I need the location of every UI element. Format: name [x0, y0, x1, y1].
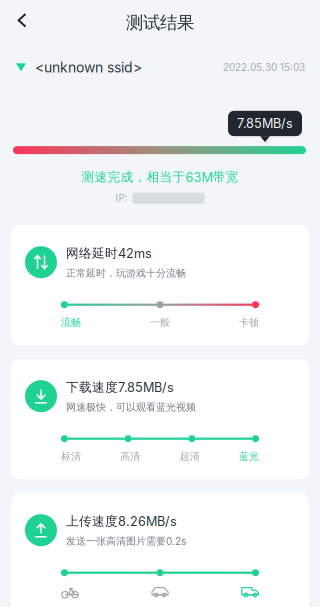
- staticText: 上传速度8.26MB/s: [66, 513, 177, 529]
- staticText: 卡顿: [239, 316, 259, 329]
- staticText: 蓝光: [239, 450, 259, 463]
- staticText: 超清: [180, 450, 200, 463]
- button[interactable]: Back: [0, 0, 39, 38]
- staticText: 高清: [120, 450, 140, 463]
- staticText: 网络延时42ms: [66, 245, 152, 261]
- staticText: 测速完成，相当于63M带宽: [81, 169, 238, 185]
- staticText: 2022.05.30 15:03: [223, 61, 305, 73]
- staticText: 正常延时，玩游戏十分流畅: [66, 267, 186, 279]
- staticText: 发送一张高清图片需要0.2s: [66, 535, 186, 547]
- staticText: 流畅: [61, 316, 81, 329]
- staticText: 测试结果: [126, 12, 194, 34]
- staticText: 7.85MB/s: [237, 116, 293, 131]
- staticText: IP:: [115, 192, 127, 204]
- staticText: 一般: [150, 316, 170, 329]
- staticText: 标清: [61, 450, 81, 463]
- staticText: 网速极快，可以观看蓝光视频: [66, 401, 196, 413]
- staticText: 下载速度7.85MB/s: [66, 379, 174, 395]
- staticText: <unknown ssid>: [35, 59, 142, 76]
